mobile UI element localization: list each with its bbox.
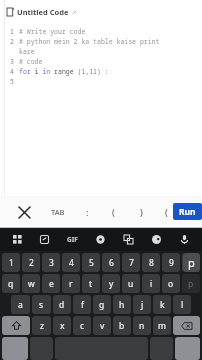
button[interactable]: h xyxy=(113,295,131,314)
staticText: o xyxy=(168,278,174,290)
button[interactable]: ( xyxy=(107,201,120,223)
staticText: x xyxy=(60,320,65,332)
button[interactable]: ) xyxy=(135,201,148,223)
staticText: 0 xyxy=(189,257,194,269)
staticText: 4 xyxy=(10,67,14,76)
staticText: c xyxy=(80,320,85,332)
button[interactable]: File xyxy=(0,5,202,19)
button[interactable]: i xyxy=(142,274,160,293)
staticText: t xyxy=(89,278,93,290)
staticText: # Write your code xyxy=(19,27,86,36)
staticText: Untitled Code xyxy=(17,7,69,17)
button[interactable]: Run xyxy=(173,203,202,220)
button[interactable]: TAB xyxy=(47,201,69,223)
staticText: l xyxy=(181,299,184,311)
button[interactable]: v xyxy=(93,316,111,335)
staticText: j xyxy=(141,299,144,311)
button[interactable]: Stickers xyxy=(36,231,53,248)
button[interactable]: p xyxy=(182,274,200,293)
button[interactable]: Voice input xyxy=(176,231,193,248)
staticText: 5 xyxy=(89,257,94,269)
button[interactable]: t xyxy=(82,274,100,293)
button[interactable]: d xyxy=(53,295,71,314)
button[interactable]: x xyxy=(53,316,71,335)
button[interactable]: 0 xyxy=(182,253,200,272)
staticText: s xyxy=(39,299,44,311)
staticText: r xyxy=(69,278,73,290)
staticText: # code xyxy=(19,57,43,66)
button[interactable]: Emoji xyxy=(30,337,53,360)
button[interactable]: 6 xyxy=(102,253,120,272)
button[interactable]: Backspace xyxy=(173,316,200,335)
button[interactable]: 9 xyxy=(162,253,180,272)
button[interactable]: y xyxy=(102,274,120,293)
staticText: 8 xyxy=(149,257,154,269)
button[interactable]: u xyxy=(122,274,140,293)
button[interactable]: w xyxy=(22,274,40,293)
staticText: a xyxy=(18,299,23,311)
button[interactable]: n xyxy=(133,316,151,335)
button[interactable]: Enter xyxy=(175,337,200,360)
staticText: d xyxy=(59,299,65,311)
staticText: m xyxy=(158,320,166,332)
button[interactable]: j xyxy=(133,295,151,314)
button[interactable]: 5 xyxy=(82,253,100,272)
staticText: 5 xyxy=(10,77,14,86)
button[interactable]: Translate xyxy=(120,231,137,248)
button[interactable]: g xyxy=(93,295,111,314)
staticText: 2 xyxy=(10,37,14,46)
button[interactable]: c xyxy=(73,316,91,335)
button[interactable]: 3 xyxy=(42,253,60,272)
button[interactable]: m xyxy=(153,316,171,335)
button[interactable]: : xyxy=(81,201,94,223)
button[interactable]: r xyxy=(62,274,80,293)
button[interactable]: s xyxy=(32,295,51,314)
staticText: ) xyxy=(140,206,143,218)
button[interactable]: Close xyxy=(13,201,35,223)
staticText: e xyxy=(49,278,54,290)
button[interactable]: b xyxy=(113,316,131,335)
button[interactable]: f xyxy=(73,295,91,314)
staticText: 1 xyxy=(9,257,14,269)
staticText: p xyxy=(188,255,195,270)
staticText: # python mein 2 ka table kaise print xyxy=(19,37,160,46)
button[interactable]: l xyxy=(173,295,191,314)
button[interactable]: 1 xyxy=(2,253,20,272)
staticText: 4 xyxy=(69,257,74,269)
staticText: Run xyxy=(179,206,196,218)
button[interactable]: GIF xyxy=(64,231,81,248)
staticText: w xyxy=(28,278,35,290)
button[interactable]: Period xyxy=(150,337,173,360)
staticText: for i in range (1,11) : xyxy=(19,67,109,76)
button[interactable]: 8 xyxy=(142,253,160,272)
button[interactable]: o xyxy=(162,274,180,293)
other: Edit xyxy=(72,10,77,15)
button[interactable]: k xyxy=(153,295,171,314)
staticText: ( xyxy=(165,206,168,218)
button[interactable]: Themes xyxy=(148,231,165,248)
staticText: u xyxy=(128,278,134,290)
button[interactable]: 4 xyxy=(62,253,80,272)
staticText: TAB xyxy=(51,207,65,217)
button[interactable]: 2 xyxy=(22,253,40,272)
staticText: : xyxy=(86,206,89,218)
staticText: p xyxy=(188,278,194,290)
staticText: h xyxy=(119,299,125,311)
button[interactable]: Settings xyxy=(92,231,109,248)
staticText: k xyxy=(160,299,165,311)
button[interactable]: Shift xyxy=(2,316,30,335)
staticText: ( xyxy=(112,206,115,218)
button[interactable]: Symbols xyxy=(2,337,28,360)
staticText: 2 xyxy=(29,257,34,269)
button[interactable]: ( xyxy=(161,201,171,223)
staticText: z xyxy=(40,320,44,332)
staticText: 6 xyxy=(109,257,114,269)
button[interactable]: e xyxy=(42,274,60,293)
button[interactable]: z xyxy=(32,316,51,335)
button[interactable]: 7 xyxy=(122,253,140,272)
button[interactable]: q xyxy=(2,274,20,293)
staticText: g xyxy=(99,299,105,311)
button[interactable]: a xyxy=(11,295,30,314)
button[interactable]: Apps xyxy=(9,231,26,248)
